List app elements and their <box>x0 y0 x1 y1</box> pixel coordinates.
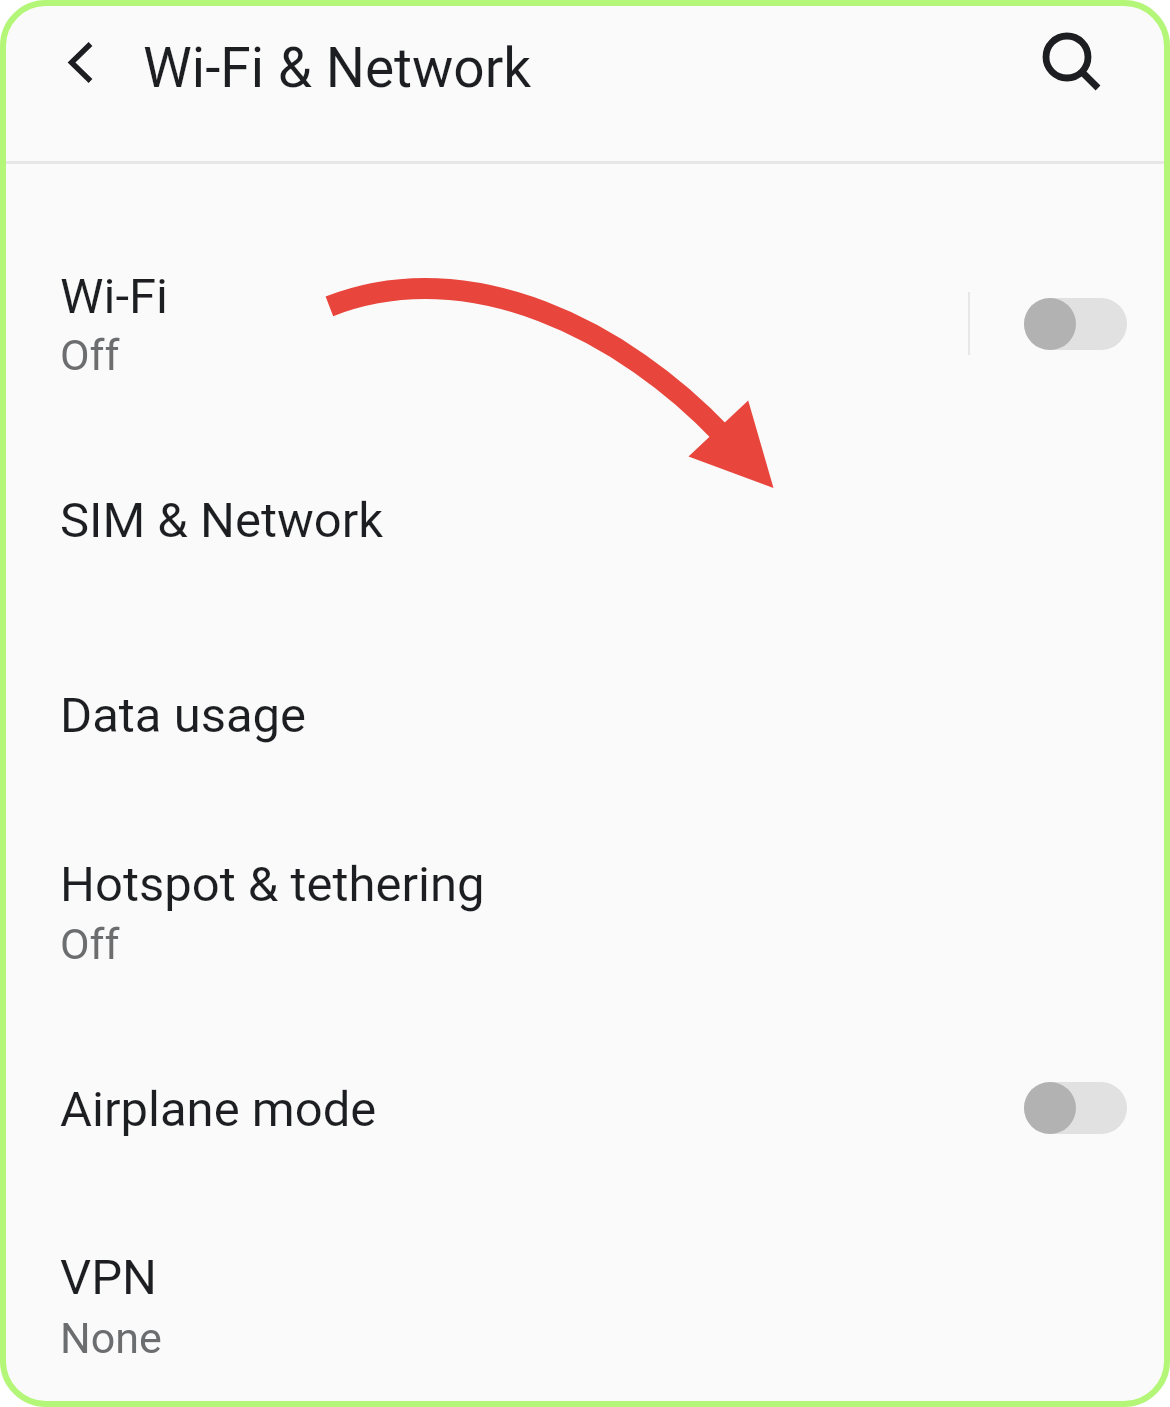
button[interactable] <box>0 236 1170 413</box>
staticText: Hotspot & tethering <box>60 856 485 913</box>
button[interactable]: Wi-Fi switch, off <box>1024 298 1127 350</box>
staticText: Off <box>60 330 120 380</box>
staticText: Data usage <box>60 687 307 744</box>
button[interactable]: Search <box>1017 7 1117 107</box>
staticText: Off <box>60 919 120 969</box>
staticText: Airplane mode <box>60 1081 377 1138</box>
button[interactable] <box>0 1217 1170 1396</box>
staticText: None <box>60 1313 162 1363</box>
staticText: Wi-Fi <box>60 268 168 325</box>
staticText: Wi-Fi & Network <box>143 36 532 100</box>
button[interactable] <box>0 824 1170 1002</box>
button[interactable] <box>0 655 1170 774</box>
button[interactable] <box>0 1049 1170 1168</box>
staticText: SIM & Network <box>60 492 384 549</box>
button[interactable] <box>0 460 1170 579</box>
button[interactable]: Navigate up <box>35 19 115 99</box>
button[interactable]: Airplane mode switch, off <box>1024 1082 1127 1134</box>
staticText: VPN <box>60 1249 158 1306</box>
